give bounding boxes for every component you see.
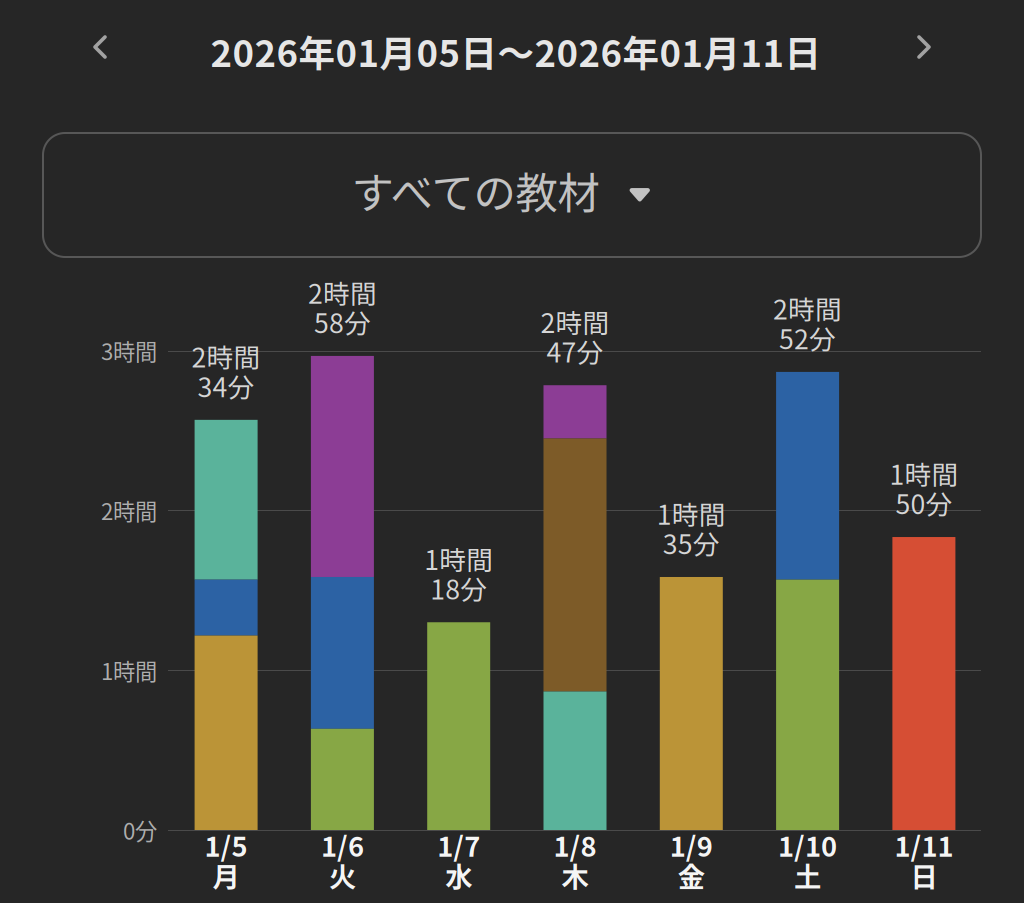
staticText: 58分	[314, 302, 371, 341]
staticText: 1/10	[778, 825, 837, 865]
staticText: 2時間	[540, 302, 609, 341]
staticText: 47分	[546, 332, 603, 370]
staticText: 1/5	[205, 825, 248, 865]
staticText: 月	[213, 856, 240, 895]
staticText: 1時間	[424, 539, 493, 578]
staticText: 1/11	[894, 825, 953, 865]
staticText: 金	[678, 856, 705, 895]
staticText: 1時間	[101, 654, 157, 686]
staticText: 1/9	[670, 825, 713, 865]
staticText: 木	[561, 856, 588, 895]
button[interactable]: 次の週	[888, 11, 960, 83]
staticText: 34分	[198, 366, 255, 405]
staticText: 土	[794, 856, 821, 895]
staticText: 52分	[779, 318, 836, 357]
button[interactable]: すべての教材	[43, 133, 981, 257]
staticText: 2026年01月05日〜2026年01月11日	[210, 24, 821, 77]
staticText: 1時間	[657, 494, 726, 532]
staticText: 火	[329, 856, 356, 895]
staticText: 2時間	[308, 273, 377, 311]
staticText: 1/6	[321, 825, 364, 865]
staticText: 18分	[430, 569, 487, 607]
button[interactable]: 前の週	[64, 11, 136, 83]
staticText: 2時間	[192, 337, 261, 375]
staticText: 水	[445, 856, 472, 895]
staticText: 35分	[663, 523, 720, 562]
staticText: 50分	[895, 483, 952, 522]
staticText: 日	[910, 856, 937, 895]
staticText: 1/8	[553, 825, 596, 865]
staticText: 3時間	[101, 334, 157, 367]
staticText: 2時間	[101, 494, 157, 526]
staticText: 1/7	[437, 825, 480, 865]
staticText: 0分	[123, 814, 157, 846]
staticText: すべての教材	[351, 159, 599, 221]
staticText: 1時間	[889, 454, 958, 492]
staticText: 2時間	[773, 289, 842, 327]
